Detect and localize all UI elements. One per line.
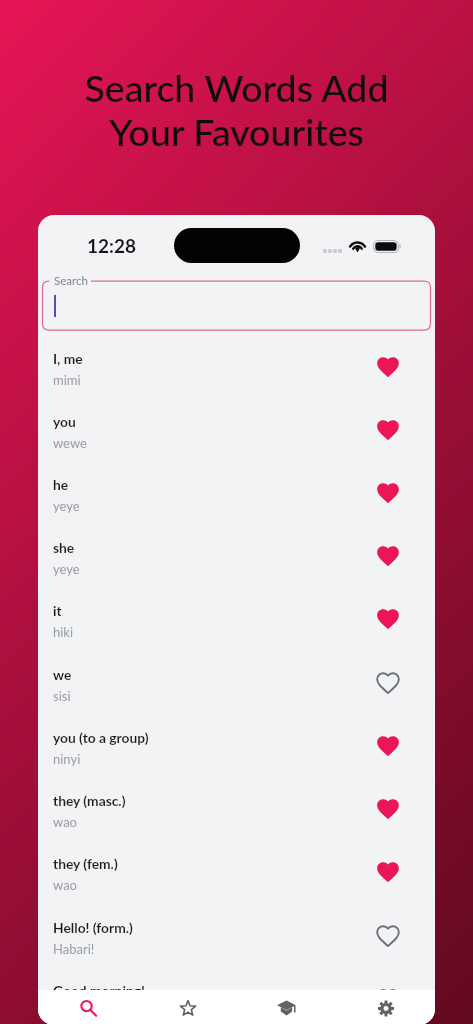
staticText: yeye (53, 498, 80, 514)
button[interactable]: Favourites (138, 990, 237, 1024)
button[interactable]: it (38, 586, 435, 649)
staticText: it (53, 602, 62, 619)
button[interactable]: they (fem.) (38, 839, 435, 902)
button[interactable]: Add to favourites (370, 665, 406, 701)
button[interactable]: Search (38, 990, 138, 1024)
staticText: yeye (53, 561, 80, 577)
button[interactable]: Remove from favourites (370, 412, 406, 448)
button[interactable]: Search (38, 273, 435, 339)
staticText: they (masc.) (53, 792, 126, 809)
button[interactable]: Remove from favourites (370, 854, 406, 890)
button[interactable]: Settings (336, 990, 435, 1024)
button[interactable]: Add to favourites (370, 918, 406, 954)
button[interactable]: you (to a group) (38, 713, 435, 776)
button[interactable]: Remove from favourites (370, 349, 406, 385)
staticText: ninyi (53, 751, 81, 767)
staticText: they (fem.) (53, 855, 118, 872)
button[interactable]: they (masc.) (38, 776, 435, 839)
staticText: Habari! (53, 941, 95, 957)
button[interactable]: Remove from favourites (370, 791, 406, 827)
button[interactable]: Hello! (form.) (38, 903, 435, 966)
button[interactable]: we (38, 650, 435, 713)
button[interactable]: I, me (38, 334, 435, 397)
button[interactable]: Remove from favourites (370, 601, 406, 637)
button[interactable]: he (38, 460, 435, 523)
staticText: 12:28 (87, 234, 136, 257)
button[interactable]: Remove from favourites (370, 538, 406, 574)
staticText: mimi (53, 372, 81, 388)
staticText: wewe (53, 435, 87, 451)
button[interactable]: Remove from favourites (370, 728, 406, 764)
staticText: Search (54, 274, 88, 288)
button[interactable]: Good morning! (38, 966, 435, 1024)
staticText: I, me (53, 350, 83, 367)
staticText: Good morning! (53, 982, 145, 999)
staticText: sisi (53, 688, 71, 704)
staticText: Hello! (form.) (53, 919, 133, 936)
staticText: we (53, 666, 72, 683)
staticText: wao (53, 814, 77, 830)
staticText: hiki (53, 624, 74, 640)
staticText: Search Words Add Your Favourites (0, 65, 473, 154)
staticText: he (53, 476, 69, 493)
button[interactable]: Remove from favourites (370, 981, 406, 1017)
staticText: Habari za asubuhi! (53, 1004, 158, 1020)
button[interactable]: Learn (237, 990, 336, 1024)
button[interactable]: you (38, 397, 435, 460)
staticText: you (53, 413, 76, 430)
button[interactable]: she (38, 523, 435, 586)
staticText: wao (53, 877, 77, 893)
staticText: she (53, 539, 75, 556)
staticText: you (to a group) (53, 729, 149, 746)
button[interactable]: Remove from favourites (370, 475, 406, 511)
